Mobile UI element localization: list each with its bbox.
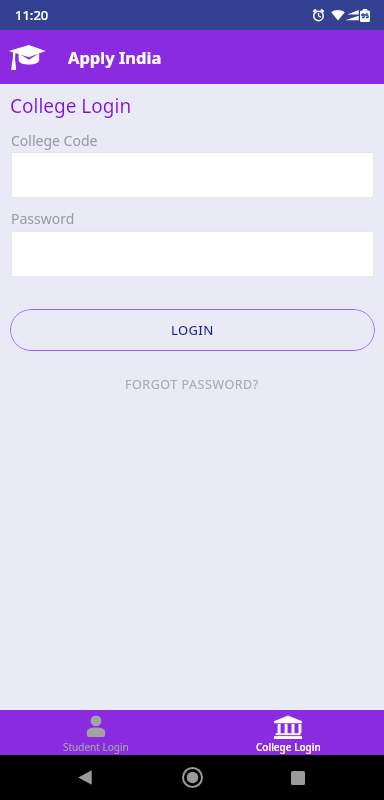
staticText: College Login [256,740,321,754]
staticText: Password [11,209,75,228]
staticText: College Login [10,93,132,119]
button[interactable] [11,231,374,277]
staticText: LOGIN [171,321,214,339]
staticText: 11:20 [15,6,49,24]
button[interactable]: College Login [192,710,384,755]
staticText: Student Login [63,740,129,754]
button[interactable] [11,152,374,198]
button[interactable]: Recents [274,755,322,800]
staticText: FORGOT PASSWORD? [125,376,259,393]
staticText: College Code [11,131,98,150]
button[interactable]: Student Login [0,710,192,755]
button[interactable]: LOGIN [10,309,375,351]
button[interactable]: Back [61,755,109,800]
button[interactable]: FORGOT PASSWORD? [119,370,265,399]
button[interactable]: Home [168,755,216,800]
staticText: Apply India [68,46,162,68]
